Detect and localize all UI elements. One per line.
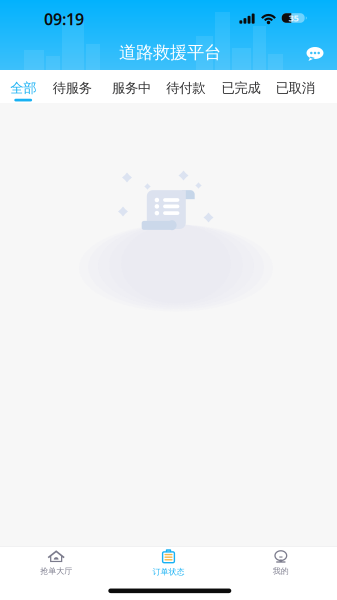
button[interactable]: 全部 xyxy=(0,70,46,103)
button[interactable]: 已取消 xyxy=(272,70,318,103)
staticText: 35 xyxy=(288,12,298,24)
staticText: 订单状态 xyxy=(152,567,184,577)
button[interactable]: 服务中 xyxy=(109,70,155,103)
staticText: 待付款 xyxy=(166,80,205,96)
button[interactable]: 在线客服 xyxy=(298,37,332,71)
staticText: 已取消 xyxy=(276,80,315,96)
staticText: 已完成 xyxy=(222,80,261,96)
button[interactable]: 抢单大厅 xyxy=(0,548,112,581)
button[interactable]: 已完成 xyxy=(218,70,264,103)
button[interactable]: 我的 xyxy=(225,548,337,581)
staticText: 待服务 xyxy=(53,80,92,96)
button[interactable]: 订单状态 xyxy=(112,548,225,581)
staticText: 抢单大厅 xyxy=(40,566,72,576)
staticText: 道路救援平台 xyxy=(119,42,221,63)
staticText: 全部 xyxy=(10,80,36,96)
button[interactable]: 待服务 xyxy=(49,70,95,103)
staticText: 我的 xyxy=(273,566,289,576)
staticText: 09:19 xyxy=(44,8,84,30)
staticText: 服务中 xyxy=(112,80,151,96)
button[interactable]: 待付款 xyxy=(163,70,209,103)
